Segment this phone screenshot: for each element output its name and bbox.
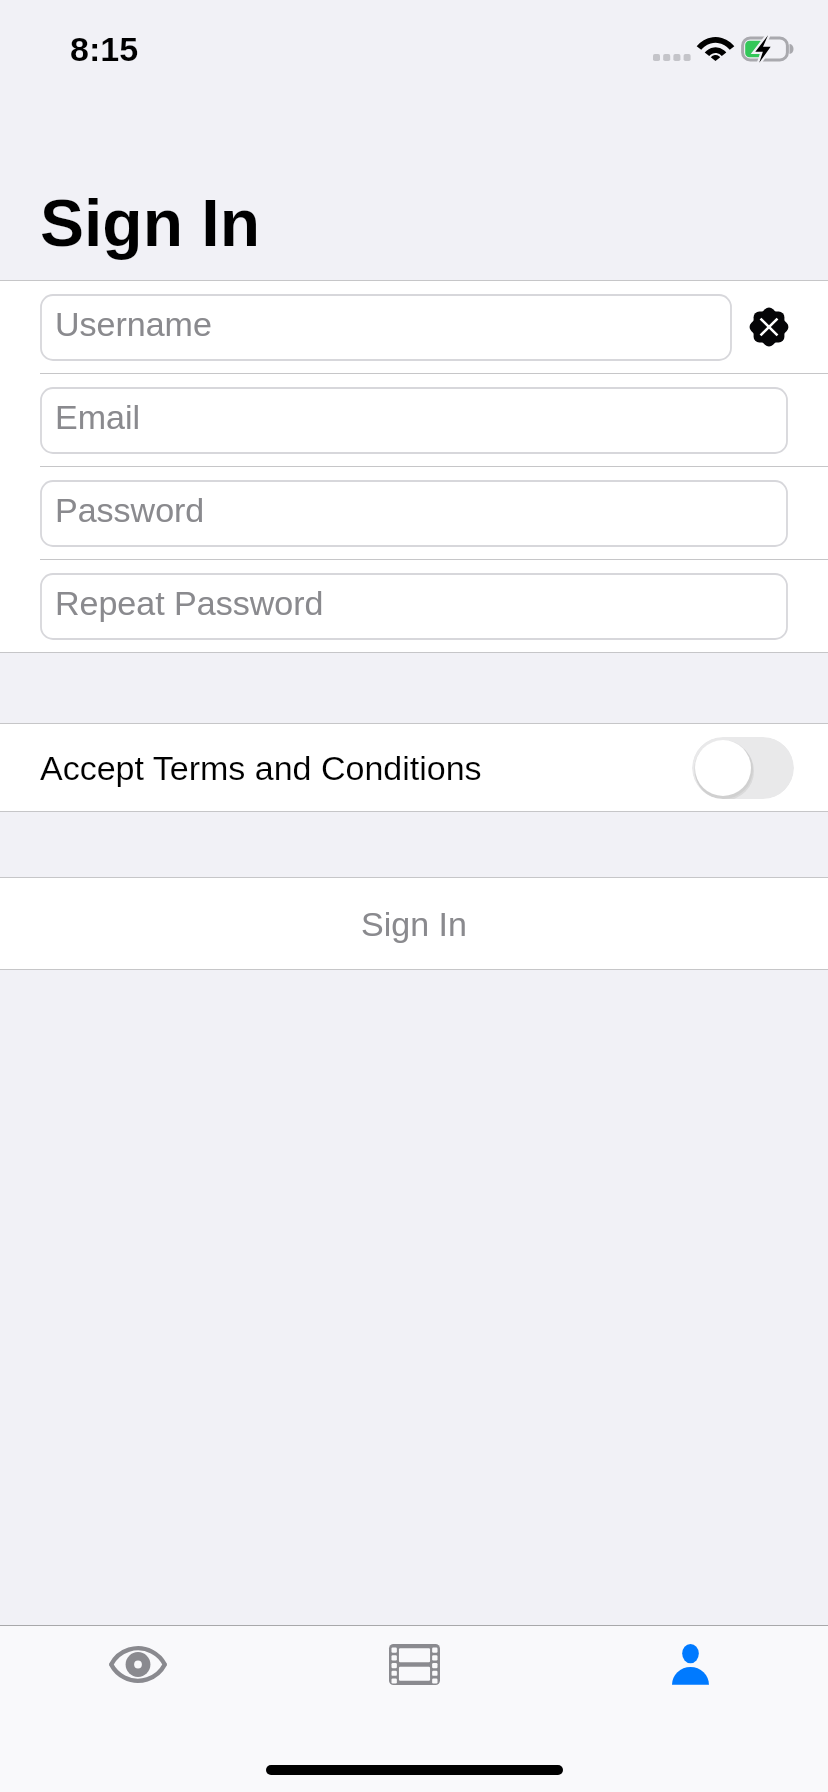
button[interactable]: Email	[40, 387, 788, 454]
button[interactable]: Clear	[732, 281, 828, 373]
button[interactable]: Watch	[0, 1626, 276, 1702]
staticText: 8:15	[70, 30, 139, 68]
button[interactable]: Repeat Password	[40, 573, 788, 640]
button[interactable]: Accept Terms and Conditions	[0, 724, 828, 811]
staticText: Accept Terms and Conditions	[40, 749, 482, 787]
staticText: Sign In	[40, 186, 260, 260]
staticText: Password	[55, 491, 205, 529]
button[interactable]: Accept Terms and Conditions toggle, off	[692, 737, 794, 799]
button[interactable]: Sign In	[0, 878, 828, 969]
staticText: Repeat Password	[55, 584, 324, 622]
staticText: Sign In	[361, 905, 467, 943]
staticText: Username	[55, 305, 212, 343]
button[interactable]: Username	[40, 294, 732, 361]
button[interactable]: Movies	[276, 1626, 552, 1702]
staticText: Email	[55, 398, 141, 436]
button[interactable]: Profile	[552, 1626, 828, 1702]
button[interactable]: Password	[40, 480, 788, 547]
